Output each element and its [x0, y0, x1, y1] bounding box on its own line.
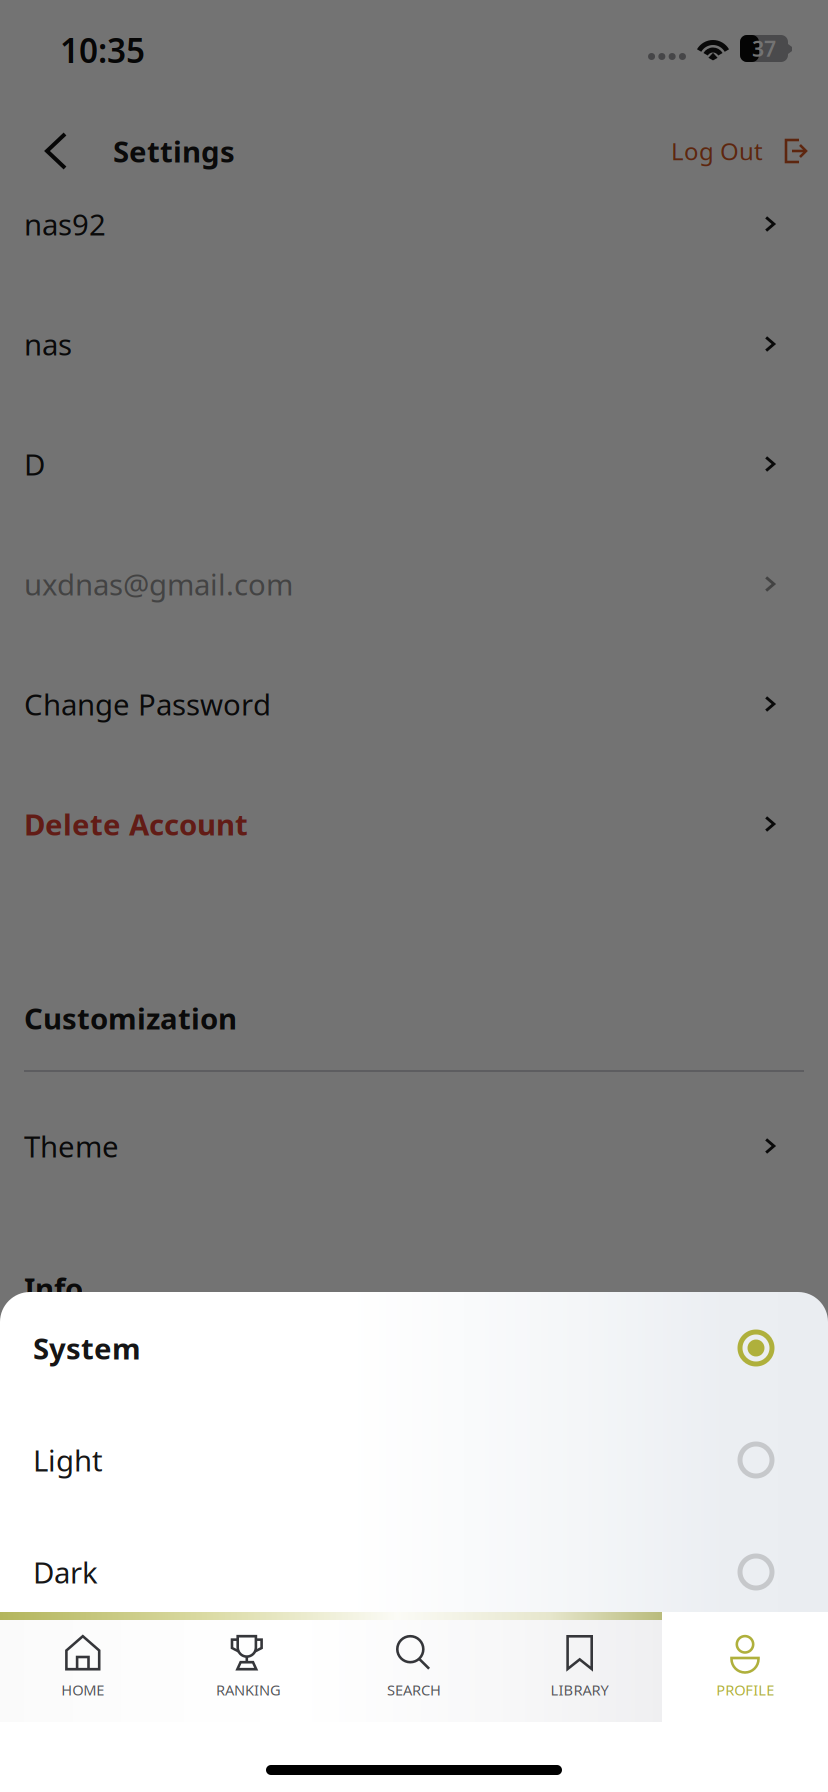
button[interactable]: Light [0, 1404, 828, 1516]
staticText: nas92 [24, 204, 106, 243]
button[interactable]: Dark [0, 1516, 828, 1628]
button[interactable]: Delete Account [0, 794, 828, 854]
staticText: SEARCH [387, 1680, 441, 1699]
staticText: Light [33, 1440, 103, 1479]
button[interactable]: nas92 [0, 194, 828, 254]
staticText: Change Password [24, 684, 271, 723]
button[interactable]: HOME [0, 1620, 166, 1722]
staticText: Delete Account [24, 804, 248, 843]
button[interactable]: Back [0, 118, 90, 184]
staticText: LIBRARY [551, 1680, 609, 1699]
button[interactable]: System [0, 1292, 828, 1404]
staticText: HOME [61, 1680, 104, 1699]
button[interactable]: Log Out [671, 118, 828, 184]
button[interactable]: SEARCH [331, 1620, 497, 1722]
button[interactable]: nas [0, 314, 828, 374]
button[interactable]: Theme [0, 1116, 828, 1176]
staticText: Customization [24, 998, 237, 1037]
staticText: RANKING [216, 1680, 281, 1699]
staticText: Settings [113, 131, 235, 170]
staticText: 37 [752, 34, 776, 63]
staticText: uxdnas@gmail.com [24, 564, 293, 603]
staticText: PROFILE [716, 1680, 774, 1699]
button[interactable]: uxdnas@gmail.com [0, 554, 828, 614]
button[interactable]: PROFILE [662, 1620, 828, 1722]
staticText: Dark [33, 1552, 98, 1591]
staticText: Info [24, 1268, 83, 1307]
button[interactable]: RANKING [166, 1620, 331, 1722]
staticText: Log Out [671, 135, 763, 167]
button[interactable]: D [0, 434, 828, 494]
staticText: System [33, 1328, 141, 1367]
staticText: nas [24, 324, 72, 363]
button[interactable]: Change Password [0, 674, 828, 734]
staticText: D [24, 444, 45, 483]
button[interactable]: LIBRARY [497, 1620, 662, 1722]
staticText: Theme [24, 1126, 119, 1165]
staticText: 10:35 [60, 28, 145, 72]
